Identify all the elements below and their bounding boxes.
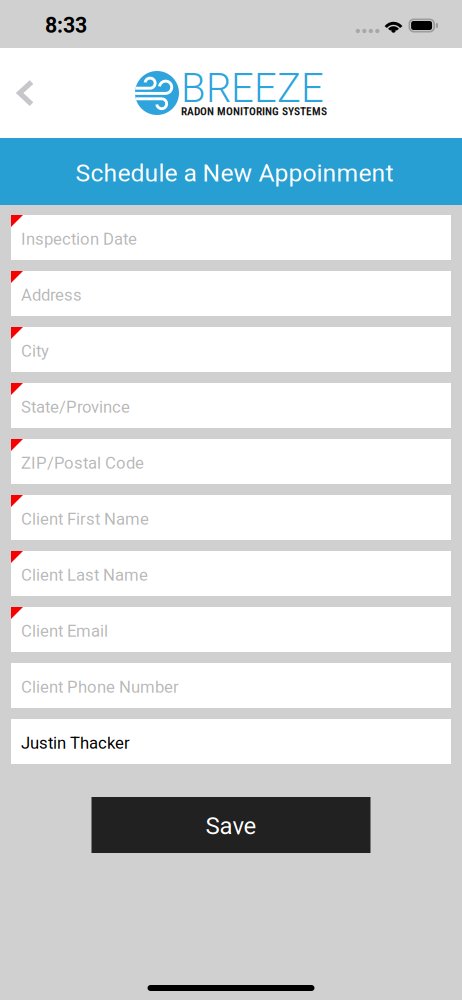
button[interactable]: Back: [0, 48, 52, 138]
staticText: 8:33: [45, 13, 87, 38]
button[interactable]: Client Last Name: [11, 551, 451, 596]
button[interactable]: Client Phone Number: [11, 663, 451, 708]
staticText: Justin Thacker: [21, 733, 130, 753]
staticText: State/Province: [21, 397, 130, 417]
staticText: Save: [205, 812, 256, 840]
button[interactable]: Client First Name: [11, 495, 451, 540]
button[interactable]: Client Email: [11, 607, 451, 652]
button[interactable]: State/Province: [11, 383, 451, 428]
staticText: ZIP/Postal Code: [21, 453, 144, 473]
button[interactable]: City: [11, 327, 451, 372]
button[interactable]: Address: [11, 271, 451, 316]
staticText: Client Last Name: [21, 565, 148, 585]
staticText: Schedule a New Appoinment: [75, 158, 393, 187]
staticText: Client Email: [21, 621, 108, 641]
staticText: Client Phone Number: [21, 677, 179, 697]
button[interactable]: ZIP/Postal Code: [11, 439, 451, 484]
staticText: Address: [21, 285, 82, 305]
staticText: Inspection Date: [21, 229, 137, 249]
staticText: Client First Name: [21, 509, 149, 529]
staticText: RADON MONITORING SYSTEMS: [181, 105, 327, 118]
staticText: BREEZE: [181, 65, 324, 112]
staticText: City: [21, 341, 49, 361]
button[interactable]: Justin Thacker: [11, 719, 451, 764]
button[interactable]: Save: [91, 797, 370, 853]
button[interactable]: Inspection Date: [11, 215, 451, 260]
